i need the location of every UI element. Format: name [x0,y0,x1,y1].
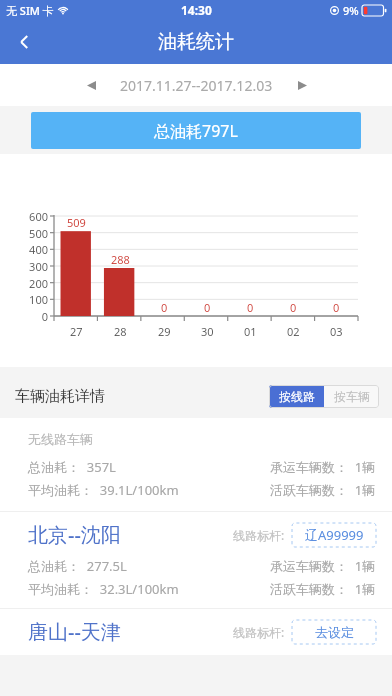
staticText: 02 [287,324,300,339]
staticText: 无线路车辆 [28,431,93,447]
staticText: 平均油耗： 39.1L/100km [28,481,179,499]
staticText: 唐山--天津 [28,618,121,645]
button[interactable]: 按线路 [269,385,324,408]
staticText: 14:30 [181,2,212,18]
staticText: 活跃车辆数： 1辆 [270,580,376,598]
button[interactable]: 无线路车辆 [0,418,392,511]
staticText: 400 [8,242,48,257]
staticText: 2017.11.27--2017.12.03 [120,76,273,95]
staticText: 线路标杆: [233,624,285,640]
staticText: 500 [8,226,48,241]
button[interactable]: 北京--沈阳 [0,512,392,608]
staticText: 辽A99999 [305,526,364,544]
staticText: 按线路 [279,389,315,404]
staticText: 100 [8,292,48,307]
staticText: 按车辆 [334,389,370,404]
button[interactable]: 唐山--天津 [0,609,392,655]
staticText: 平均油耗： 32.3L/100km [28,580,179,598]
staticText: 0 [161,300,168,315]
staticText: 288 [111,252,130,267]
staticText: 总油耗： 357L [28,458,116,476]
staticText: 300 [8,259,48,274]
button[interactable]: 按车辆 [324,385,379,408]
staticText: 承运车辆数： 1辆 [270,458,376,476]
staticText: 01 [244,324,257,339]
staticText: 30 [201,324,214,339]
staticText: 总油耗797L [154,120,238,142]
staticText: 总油耗： 277.5L [28,557,127,575]
staticText: 509 [67,215,86,230]
button[interactable]: Next week [285,68,319,102]
button[interactable]: 去设定 [292,620,376,644]
staticText: 03 [330,324,343,339]
staticText: 600 [8,209,48,224]
button[interactable]: Back [0,20,48,64]
staticText: 29 [158,324,171,339]
staticText: 9% [343,3,359,18]
button[interactable]: 总油耗797L [31,112,361,149]
staticText: 0 [204,300,211,315]
staticText: 0 [8,309,48,324]
staticText: 北京--沈阳 [28,521,121,548]
button[interactable]: Previous week [74,68,108,102]
staticText: 200 [8,276,48,291]
staticText: 无 SIM 卡 [6,3,54,18]
staticText: 27 [70,324,83,339]
staticText: 承运车辆数： 1辆 [270,557,376,575]
staticText: 28 [114,324,127,339]
staticText: 油耗统计 [158,30,234,54]
staticText: 去设定 [315,624,354,640]
staticText: 0 [290,300,297,315]
staticText: 0 [333,300,340,315]
button[interactable]: 辽A99999 [292,523,376,547]
staticText: 0 [247,300,254,315]
staticText: 车辆油耗详情 [15,387,105,406]
staticText: 活跃车辆数： 1辆 [270,481,376,499]
staticText: 线路标杆: [233,527,285,543]
